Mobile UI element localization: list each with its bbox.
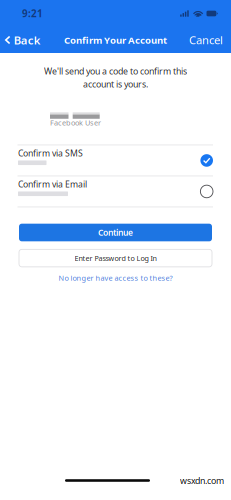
staticText: Confirm Your Account bbox=[64, 33, 167, 47]
staticText: Continue bbox=[98, 227, 133, 238]
button[interactable]: Enter Password to Log In bbox=[19, 249, 212, 267]
button[interactable]: Confirm via SMS bbox=[0, 145, 231, 176]
staticText: 9:21 bbox=[22, 7, 43, 20]
button[interactable]: Confirm via Email bbox=[0, 176, 231, 207]
staticText: Facebook User bbox=[50, 118, 101, 128]
staticText: We'll send you a code to confirm this bbox=[44, 65, 187, 77]
staticText: account is yours. bbox=[83, 78, 148, 90]
staticText: Cancel bbox=[189, 32, 223, 48]
button[interactable]: Cancel bbox=[182, 29, 231, 51]
staticText: No longer have access to these? bbox=[58, 273, 172, 283]
staticText: Back bbox=[14, 32, 41, 48]
staticText: Confirm via Email bbox=[18, 178, 87, 190]
staticText: Confirm via SMS bbox=[18, 147, 83, 159]
button[interactable]: No longer have access to these? bbox=[48, 271, 182, 285]
staticText: Enter Password to Log In bbox=[74, 253, 156, 263]
button[interactable]: Back bbox=[0, 29, 48, 51]
button[interactable]: Continue bbox=[19, 224, 212, 241]
staticText: wsxdn.com bbox=[180, 474, 224, 486]
